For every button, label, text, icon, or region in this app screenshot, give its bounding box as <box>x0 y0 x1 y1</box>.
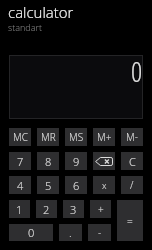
staticText: C <box>129 154 136 169</box>
button[interactable]: 6 <box>65 176 87 194</box>
button[interactable]: - <box>88 224 111 241</box>
button[interactable]: 0 <box>9 55 143 119</box>
button[interactable]: x <box>93 176 115 194</box>
staticText: + <box>98 202 104 216</box>
staticText: 2 <box>43 202 50 217</box>
staticText: . <box>69 225 72 240</box>
staticText: 7 <box>17 154 24 169</box>
button[interactable]: 7 <box>9 152 31 170</box>
button[interactable]: calculator <box>8 2 74 22</box>
staticText: standart <box>8 21 42 33</box>
staticText: MC <box>13 130 28 144</box>
button[interactable]: 1 <box>9 200 30 218</box>
button[interactable]: 9 <box>65 152 87 170</box>
staticText: MR <box>41 130 56 144</box>
staticText: 3 <box>70 202 77 217</box>
button[interactable]: 3 <box>63 200 84 218</box>
button[interactable]: M+ <box>93 128 115 146</box>
button[interactable]: 5 <box>37 176 59 194</box>
staticText: M- <box>126 130 138 144</box>
staticText: 4 <box>17 178 24 193</box>
button[interactable]: MS <box>65 128 87 146</box>
button[interactable]: M- <box>121 128 143 146</box>
staticText: calculator <box>8 2 74 22</box>
button[interactable]: 2 <box>36 200 57 218</box>
staticText: x <box>102 179 107 191</box>
staticText: 1 <box>16 202 23 217</box>
button[interactable]: MR <box>37 128 59 146</box>
staticText: 0 <box>28 225 35 240</box>
staticText: 5 <box>45 178 52 193</box>
staticText: - <box>98 226 102 240</box>
staticText: M+ <box>97 130 112 144</box>
button[interactable]: 4 <box>9 176 31 194</box>
staticText: 8 <box>45 154 52 169</box>
button[interactable]: = <box>117 200 143 241</box>
button[interactable]: C <box>121 152 143 170</box>
staticText: 9 <box>73 154 80 169</box>
staticText: MS <box>69 130 84 144</box>
staticText: = <box>127 214 133 228</box>
button[interactable]: 8 <box>37 152 59 170</box>
staticText: / <box>130 178 134 192</box>
button[interactable]: MC <box>9 128 31 146</box>
button[interactable]: / <box>121 176 143 194</box>
staticText: 0 <box>131 52 143 90</box>
button[interactable]: + <box>90 200 111 218</box>
button[interactable]: . <box>59 224 82 241</box>
button[interactable]: 0 <box>9 224 53 241</box>
staticText: 6 <box>73 178 80 193</box>
button[interactable]: Backspace <box>93 152 115 170</box>
